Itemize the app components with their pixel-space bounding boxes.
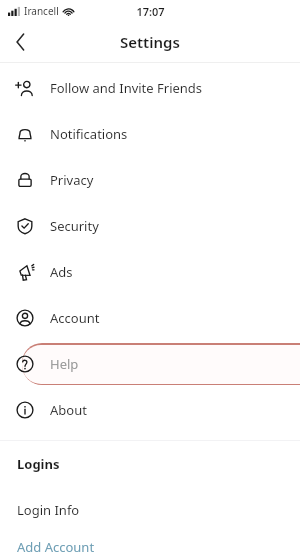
staticText: Help bbox=[50, 355, 79, 373]
staticText: 17:07 bbox=[136, 4, 165, 19]
button[interactable]: Notifications bbox=[0, 111, 300, 157]
staticText: Ads bbox=[50, 263, 73, 281]
button[interactable]: Account bbox=[0, 295, 300, 341]
staticText: Security bbox=[50, 217, 99, 235]
button[interactable]: Follow and Invite Friends bbox=[0, 65, 300, 111]
button[interactable]: About bbox=[0, 387, 300, 433]
staticText: Follow and Invite Friends bbox=[50, 79, 203, 97]
button[interactable]: Login Info bbox=[0, 487, 300, 533]
button[interactable]: Ads bbox=[0, 249, 300, 295]
staticText: Add Account bbox=[17, 538, 95, 556]
button[interactable]: Security bbox=[0, 203, 300, 249]
button[interactable]: Help bbox=[0, 341, 300, 387]
staticText: Login Info bbox=[17, 501, 80, 519]
staticText: About bbox=[50, 401, 87, 419]
staticText: Irancell bbox=[24, 4, 59, 18]
button[interactable]: Add Account bbox=[0, 533, 300, 560]
staticText: Settings bbox=[120, 32, 180, 52]
staticText: Notifications bbox=[50, 125, 128, 143]
button[interactable]: Back bbox=[0, 22, 40, 62]
button[interactable]: Privacy bbox=[0, 157, 300, 203]
staticText: Account bbox=[50, 309, 100, 327]
staticText: Privacy bbox=[50, 171, 94, 189]
staticText: Logins bbox=[17, 455, 60, 473]
